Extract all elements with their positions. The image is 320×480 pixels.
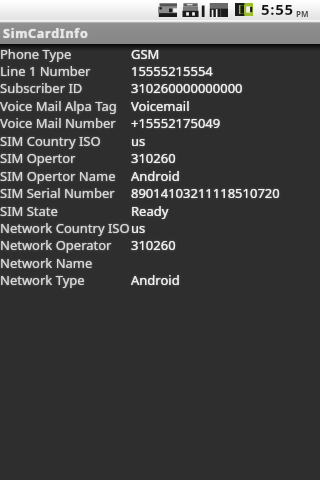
- staticText: SIM State: [0, 202, 131, 219]
- staticText: SIM Opertor Name: [0, 167, 131, 184]
- button[interactable]: Phone Type: [0, 45, 320, 62]
- button[interactable]: SIM Serial Number: [0, 184, 320, 201]
- staticText: 5:55: [261, 0, 294, 19]
- staticText: PM: [296, 8, 309, 19]
- staticText: us: [131, 132, 146, 149]
- button[interactable]: Network Type: [0, 271, 320, 288]
- button[interactable]: Battery: [235, 3, 253, 16]
- button[interactable]: Line 1 Number: [0, 62, 320, 79]
- staticText: 310260: [131, 149, 176, 166]
- button[interactable]: USB connected: [158, 3, 177, 17]
- staticText: Android: [131, 271, 180, 288]
- staticText: 15555215554: [131, 62, 213, 79]
- staticText: Voice Mail Alpa Tag: [0, 97, 131, 114]
- button[interactable]: Network Name: [0, 254, 320, 271]
- staticText: Voicemail: [131, 97, 190, 114]
- button[interactable]: SIM State: [0, 202, 320, 219]
- staticText: Ready: [131, 202, 169, 219]
- staticText: Voice Mail Number: [0, 114, 131, 131]
- staticText: Network Name: [0, 254, 131, 271]
- staticText: SIM Serial Number: [0, 184, 131, 201]
- button[interactable]: SIM Opertor: [0, 149, 320, 166]
- button[interactable]: SD card: [182, 3, 205, 17]
- staticText: SIM Opertor: [0, 149, 131, 166]
- staticText: SIM Country ISO: [0, 132, 131, 149]
- staticText: GSM: [131, 45, 160, 62]
- button[interactable]: Voice Mail Alpa Tag: [0, 97, 320, 114]
- staticText: Phone Type: [0, 45, 131, 62]
- staticText: +15552175049: [131, 114, 221, 131]
- staticText: Line 1 Number: [0, 62, 131, 79]
- button[interactable]: SIM Opertor Name: [0, 167, 320, 184]
- staticText: Network Country ISO: [0, 219, 131, 236]
- staticText: 310260: [131, 236, 176, 253]
- staticText: Network Operator: [0, 236, 131, 253]
- staticText: 310260000000000: [131, 79, 243, 96]
- button[interactable]: Subscriber ID: [0, 79, 320, 96]
- button[interactable]: Network Operator: [0, 236, 320, 253]
- staticText: SimCardInfo: [3, 25, 89, 42]
- staticText: Android: [131, 167, 180, 184]
- staticText: us: [131, 219, 146, 236]
- button[interactable]: Voice Mail Number: [0, 114, 320, 131]
- button[interactable]: Signal strength: [209, 3, 228, 17]
- staticText: 89014103211118510720: [131, 184, 280, 201]
- button[interactable]: Network Country ISO: [0, 219, 320, 236]
- staticText: Network Type: [0, 271, 131, 288]
- button[interactable]: SIM Country ISO: [0, 132, 320, 149]
- staticText: Subscriber ID: [0, 79, 131, 96]
